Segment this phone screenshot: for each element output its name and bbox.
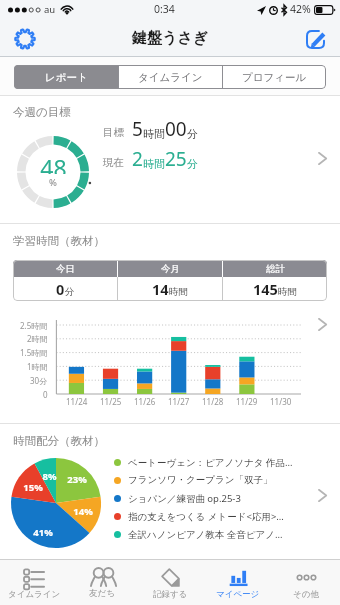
staticText: 11/25: [100, 396, 122, 407]
staticText: 分: [187, 157, 198, 171]
staticText: 30分: [30, 375, 48, 386]
button[interactable]: 友だち: [68, 560, 136, 605]
staticText: 時間: [278, 286, 297, 298]
button[interactable]: Settings: [11, 25, 39, 53]
staticText: 11/26: [134, 396, 156, 407]
staticText: au: [44, 3, 56, 16]
staticText: フランソワ・クープラン「双子」: [128, 474, 273, 486]
staticText: 8%: [42, 470, 57, 482]
staticText: 0: [56, 279, 65, 299]
staticText: 時間配分（教材）: [13, 434, 105, 448]
staticText: 0:34: [154, 2, 175, 16]
staticText: 2.5時間: [20, 320, 48, 331]
button[interactable]: その他: [272, 560, 340, 605]
staticText: 2: [132, 146, 143, 172]
staticText: タイムライン: [138, 71, 203, 84]
button[interactable]: タイムライン: [119, 65, 222, 89]
staticText: 00: [165, 116, 187, 142]
staticText: レポート: [45, 71, 88, 84]
staticText: 11/30: [270, 396, 292, 407]
staticText: 42%: [290, 2, 311, 16]
button[interactable]: 今週の目標: [0, 96, 340, 223]
staticText: 今月: [161, 263, 180, 275]
staticText: 時間: [169, 286, 188, 298]
button[interactable]: Compose: [301, 25, 329, 53]
staticText: 11/28: [202, 396, 224, 407]
button[interactable]: マイページ: [204, 560, 272, 605]
staticText: 48: [40, 152, 67, 174]
staticText: 14: [152, 279, 169, 299]
staticText: 14%: [73, 505, 93, 517]
staticText: 23%: [67, 473, 87, 485]
staticText: 現在: [103, 156, 124, 169]
staticText: その他: [293, 589, 319, 600]
staticText: %: [49, 176, 57, 189]
staticText: 今日: [56, 263, 75, 275]
staticText: 記録する: [153, 589, 188, 600]
staticText: 0: [43, 389, 48, 400]
button[interactable]: レポート: [14, 65, 118, 89]
staticText: 指の支えをつくる メトード<応用>…: [128, 510, 284, 523]
staticText: 友だち: [89, 588, 115, 599]
staticText: 15%: [23, 481, 43, 493]
staticText: 41%: [33, 526, 53, 538]
staticText: 学習時間（教材）: [13, 234, 105, 248]
staticText: 5: [132, 116, 143, 142]
button[interactable]: 記録する: [136, 560, 204, 605]
button[interactable]: タイムライン: [0, 560, 68, 605]
button[interactable]: 時間配分（教材）: [0, 424, 340, 559]
staticText: 25: [165, 146, 187, 172]
staticText: 145: [253, 279, 278, 299]
staticText: 時間: [143, 127, 165, 141]
staticText: 目標: [103, 126, 124, 139]
staticText: 1時間: [27, 361, 48, 372]
staticText: 11/27: [168, 396, 190, 407]
staticText: 11/24: [66, 396, 88, 407]
staticText: 分: [187, 127, 198, 141]
staticText: 分: [65, 286, 75, 298]
staticText: 全訳ハノンピアノ教本 全音ピアノ…: [128, 528, 283, 541]
staticText: マイページ: [216, 589, 260, 600]
staticText: 11/29: [236, 396, 258, 407]
button[interactable]: 2.5時間: [0, 305, 340, 423]
button[interactable]: プロフィール: [223, 65, 326, 89]
staticText: 2時間: [27, 333, 48, 344]
staticText: 鍵盤うさぎ: [132, 29, 209, 48]
staticText: ショパン／練習曲 op.25-3: [128, 492, 241, 505]
staticText: タイムライン: [8, 589, 61, 600]
staticText: 1.5時間: [20, 347, 48, 358]
staticText: 総計: [266, 263, 285, 275]
staticText: プロフィール: [242, 71, 307, 84]
staticText: 今週の目標: [13, 105, 71, 119]
staticText: ベートーヴェン：ピアノソナタ 作品…: [128, 456, 293, 469]
staticText: 時間: [143, 157, 165, 171]
